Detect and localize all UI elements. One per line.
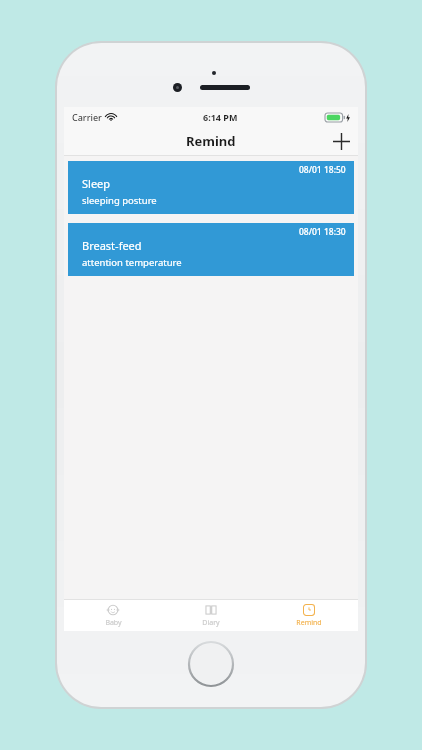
button[interactable]: Baby <box>64 600 162 631</box>
staticText: 08/01 18:30 <box>299 226 346 238</box>
staticText: Baby <box>105 618 122 628</box>
staticText: 6:14 PM <box>203 111 238 123</box>
staticText: Sleep <box>82 176 111 191</box>
staticText: 08/01 18:50 <box>299 164 346 176</box>
button[interactable]: Add reminder <box>324 127 358 155</box>
staticText: Diary <box>202 618 220 628</box>
staticText: sleeping posture <box>82 194 157 207</box>
staticText: attention temperature <box>82 256 182 269</box>
button[interactable]: Remind <box>260 600 358 631</box>
button[interactable]: 08/01 18:50 <box>68 161 354 214</box>
button[interactable]: Diary <box>162 600 260 631</box>
staticText: Carrier <box>72 111 102 123</box>
staticText: Remind <box>296 618 322 628</box>
button[interactable]: 08/01 18:30 <box>68 223 354 276</box>
staticText: Remind <box>186 132 236 150</box>
staticText: Breast-feed <box>82 238 142 253</box>
